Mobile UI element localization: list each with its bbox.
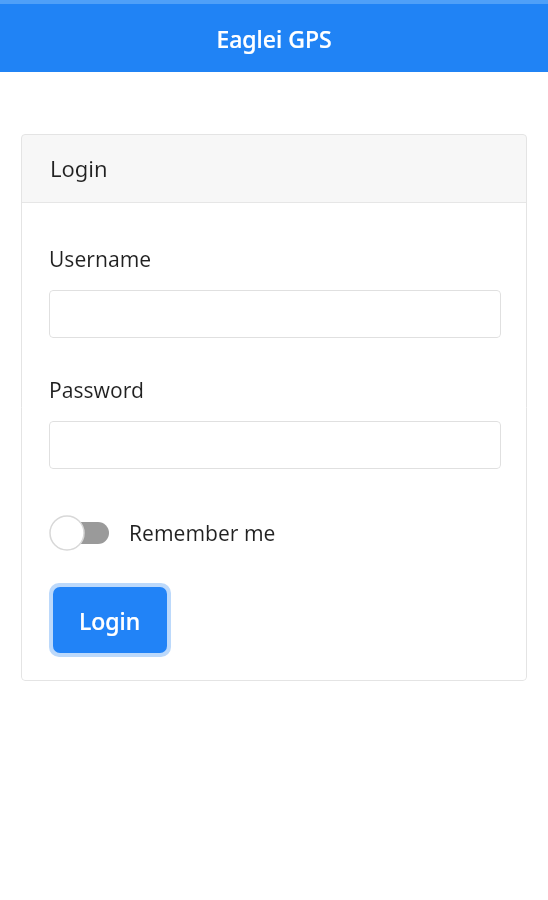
button[interactable]: [49, 421, 501, 469]
button[interactable]: Login: [53, 587, 167, 653]
staticText: Login: [50, 153, 108, 183]
other: Remember me toggle: [49, 515, 109, 551]
button[interactable]: [49, 290, 501, 338]
staticText: Username: [49, 245, 152, 274]
button[interactable]: Remember me toggle: [49, 511, 276, 555]
staticText: Login: [79, 605, 141, 636]
staticText: Remember me: [129, 519, 276, 548]
staticText: Password: [49, 376, 144, 405]
staticText: Eaglei GPS: [216, 23, 332, 54]
